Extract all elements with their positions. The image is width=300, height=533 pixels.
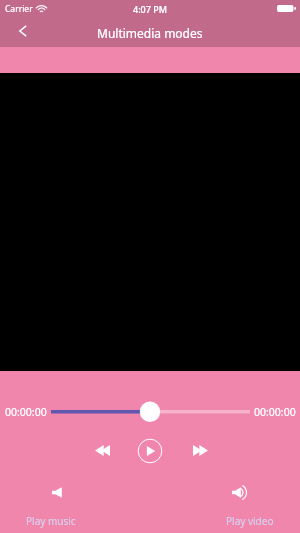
staticText: Play video — [226, 514, 274, 528]
staticText: 4:07 PM — [133, 3, 167, 15]
button[interactable]: Play — [135, 436, 165, 466]
button[interactable]: Volume down — [43, 478, 71, 506]
staticText: Carrier — [5, 3, 33, 15]
button[interactable]: Play music — [22, 510, 80, 532]
staticText: Play music — [26, 514, 76, 528]
button[interactable]: Play video — [222, 510, 278, 532]
button[interactable]: Volume up — [225, 478, 253, 506]
staticText: 00:00:00 — [5, 405, 47, 419]
button[interactable]: Seek bar — [51, 401, 250, 423]
button[interactable]: Fast forward — [186, 436, 214, 464]
button[interactable]: Rewind — [88, 436, 116, 464]
staticText: 00:00:00 — [254, 405, 296, 419]
button[interactable]: Back — [6, 14, 40, 48]
staticText: Multimedia modes — [97, 25, 203, 41]
